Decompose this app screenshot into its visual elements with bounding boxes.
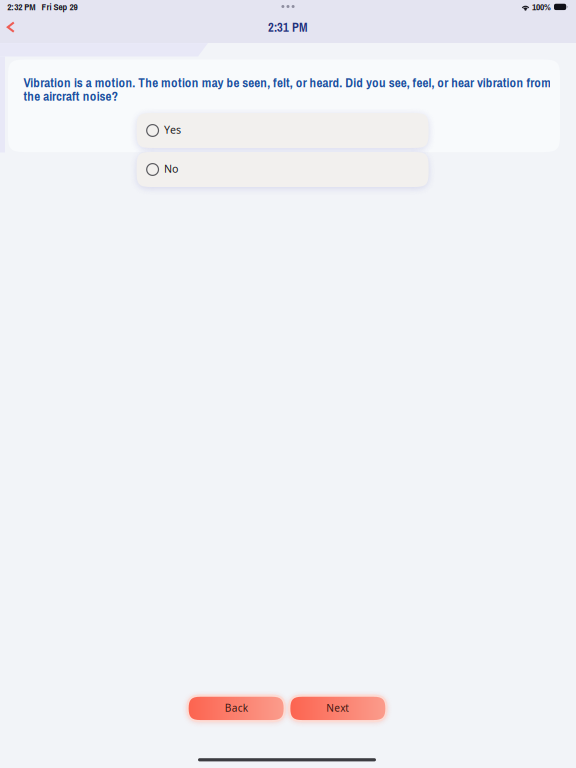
- button[interactable]: Back: [186, 694, 286, 722]
- staticText: Fri Sep 29: [42, 1, 78, 13]
- staticText: Yes: [164, 122, 181, 137]
- button[interactable]: Next: [288, 694, 387, 722]
- button[interactable]: Yes: [137, 113, 429, 148]
- staticText: 2:31 PM: [268, 19, 308, 36]
- staticText: Back: [225, 701, 248, 715]
- button[interactable]: Back: [0, 14, 24, 41]
- staticText: No: [164, 161, 178, 176]
- staticText: Vibration is a motion. The motion may be…: [23, 76, 551, 103]
- button[interactable]: No: [137, 152, 429, 187]
- staticText: Next: [326, 701, 349, 715]
- staticText: 100%: [532, 1, 551, 13]
- staticText: 2:32 PM: [7, 1, 35, 13]
